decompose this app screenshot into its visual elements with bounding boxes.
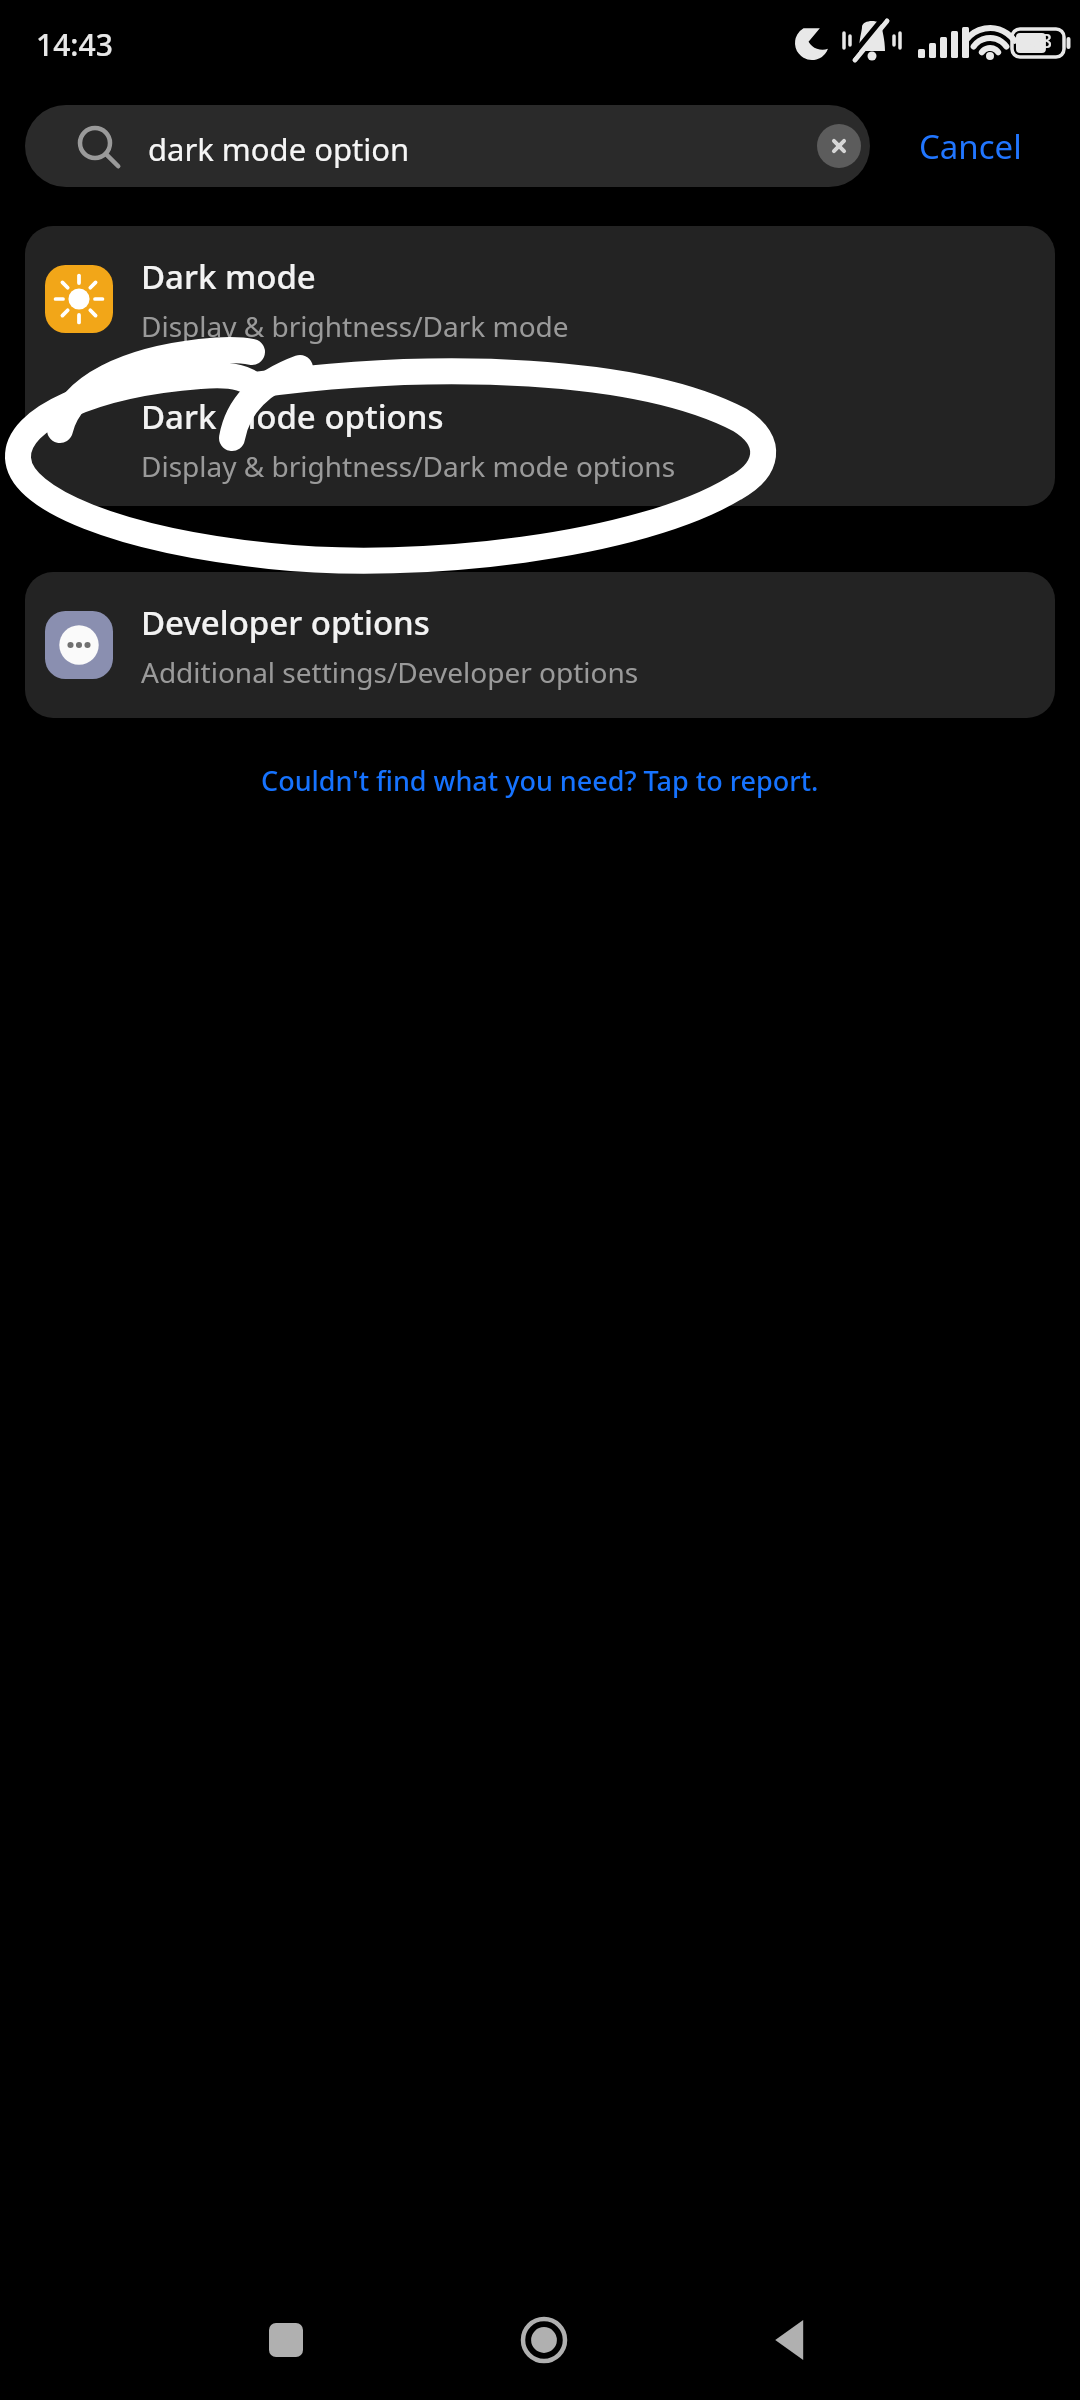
staticText: Dark mode options [141, 394, 444, 439]
staticText: Display & brightness/Dark mode [141, 307, 569, 345]
staticText: 68 [1029, 27, 1052, 54]
button[interactable]: dark mode option [25, 105, 870, 187]
staticText: Developer options [141, 600, 430, 645]
staticText: dark mode option [148, 128, 410, 170]
button[interactable]: Cancel [884, 105, 1056, 187]
button[interactable]: Developer options [25, 572, 1055, 718]
button[interactable]: Back [760, 2308, 824, 2372]
staticText: Display & brightness/Dark mode options [141, 447, 676, 485]
button[interactable]: Dark mode [25, 226, 1055, 372]
staticText: 14:43 [36, 24, 113, 65]
staticText: Couldn't find what you need? Tap to repo… [261, 762, 819, 799]
button[interactable]: Couldn't find what you need? Tap to repo… [0, 752, 1080, 808]
button[interactable]: Recent apps [256, 2310, 316, 2370]
staticText: Cancel [919, 124, 1022, 169]
button[interactable]: Dark mode options [25, 372, 1055, 506]
staticText: Additional settings/Developer options [141, 653, 639, 691]
button[interactable]: Home [510, 2306, 578, 2374]
button[interactable]: Clear search [817, 124, 861, 168]
staticText: Dark mode [141, 254, 316, 299]
